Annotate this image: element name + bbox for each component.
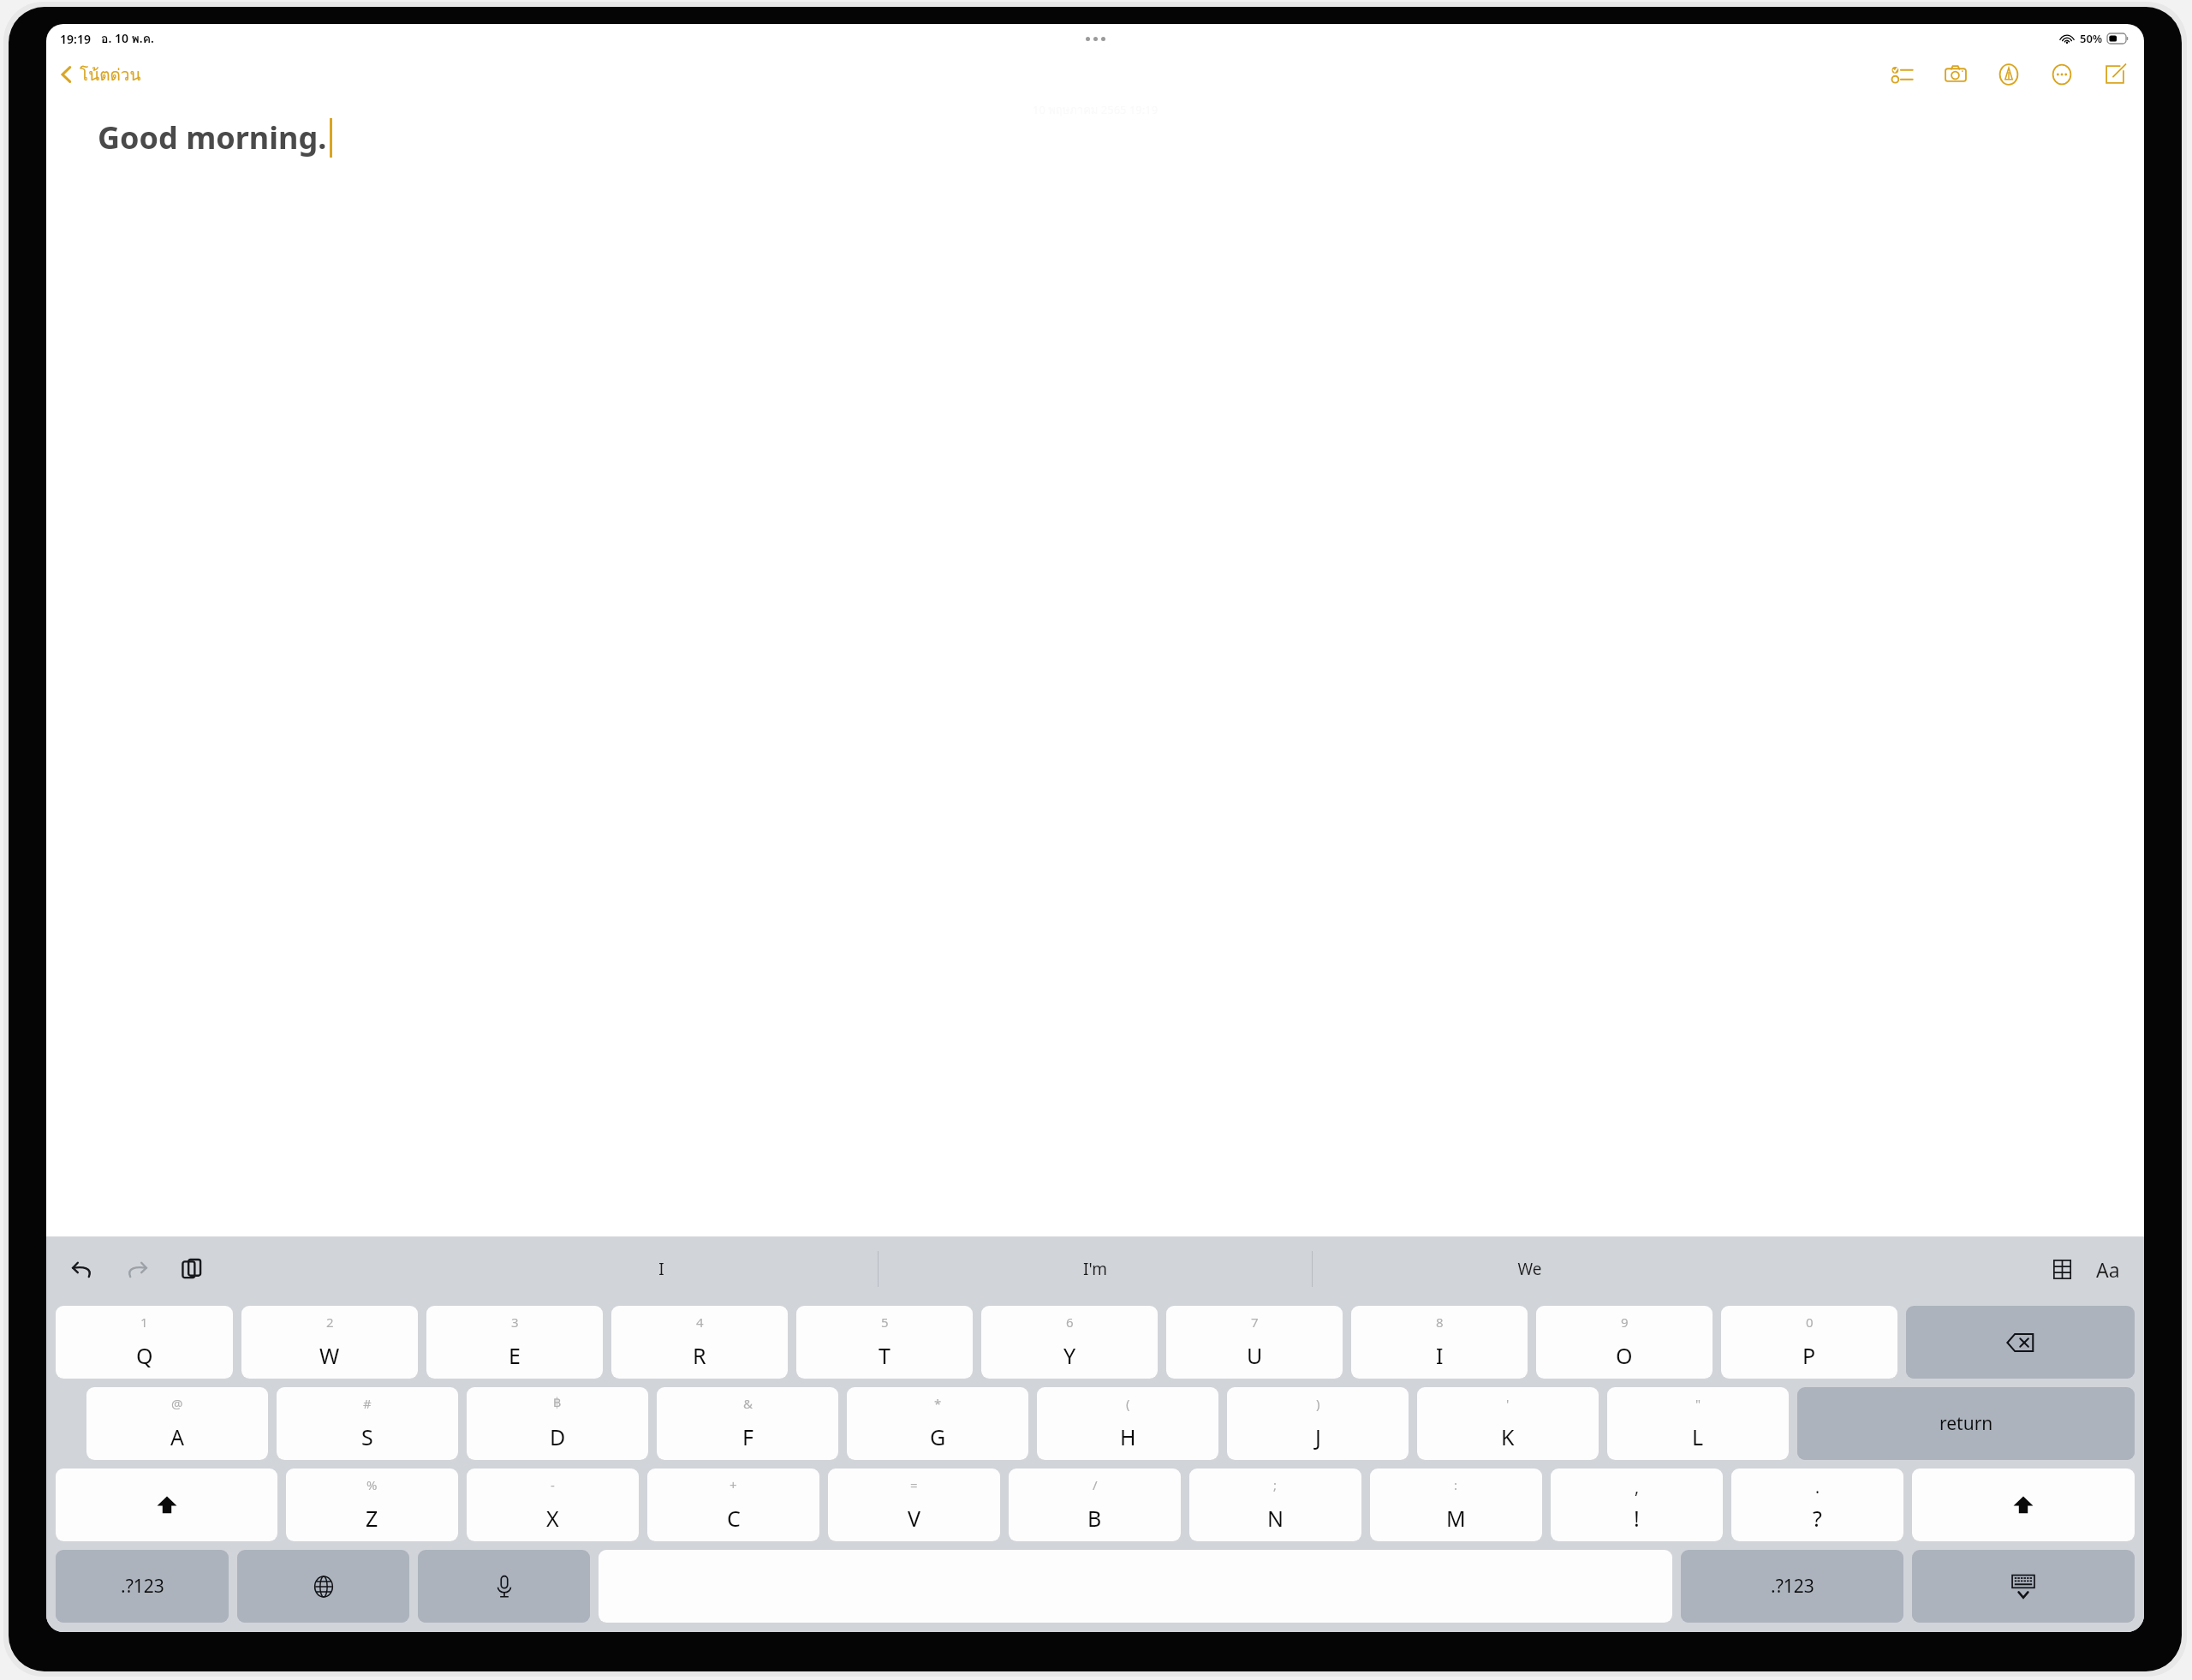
button[interactable]: Change keyboard [237, 1550, 409, 1623]
button[interactable]: @ [86, 1387, 268, 1460]
button[interactable]: * [847, 1387, 1028, 1460]
button[interactable]: More [2045, 57, 2079, 92]
staticText: E [509, 1341, 521, 1370]
staticText: 2 [326, 1314, 334, 1331]
button[interactable]: Camera [1939, 57, 1973, 92]
staticText: 1 [140, 1314, 148, 1331]
staticText: @ [171, 1395, 183, 1412]
button[interactable]: 5 [796, 1306, 973, 1379]
staticText: + [730, 1476, 737, 1493]
staticText: T [879, 1341, 890, 1370]
staticText: A [170, 1422, 184, 1451]
staticText: ; [1273, 1476, 1278, 1493]
staticText: 7 [1251, 1314, 1259, 1331]
staticText: 9 [1621, 1314, 1629, 1331]
staticText: C [727, 1504, 741, 1533]
staticText: ! [1634, 1504, 1640, 1533]
button[interactable]: Paste [175, 1252, 209, 1286]
button[interactable]: 8 [1351, 1306, 1528, 1379]
staticText: N [1267, 1504, 1284, 1533]
button[interactable]: Markup [1992, 57, 2026, 92]
button[interactable]: Insert table [2045, 1252, 2079, 1286]
button[interactable]: Aa [2091, 1252, 2125, 1286]
staticText: ฿ [553, 1395, 562, 1409]
button[interactable]: Shift [1912, 1469, 2135, 1541]
button[interactable]: % [286, 1469, 458, 1541]
button[interactable]: I [445, 1236, 878, 1302]
button[interactable]: # [277, 1387, 458, 1460]
button[interactable]: I'm [879, 1236, 1312, 1302]
staticText: & [743, 1395, 753, 1412]
button[interactable]: . [1731, 1469, 1903, 1541]
button[interactable]: - [467, 1469, 639, 1541]
staticText: : [1454, 1476, 1458, 1493]
staticText: 4 [696, 1314, 704, 1331]
staticText: M [1446, 1504, 1466, 1533]
staticText: - [551, 1476, 555, 1493]
button[interactable]: โน้ตด่วน [53, 58, 148, 91]
button[interactable]: 6 [981, 1306, 1158, 1379]
staticText: V [908, 1504, 921, 1533]
staticText: ' [1506, 1395, 1510, 1412]
staticText: I [658, 1258, 664, 1280]
staticText: ) [1316, 1395, 1320, 1412]
staticText: 19:19 [60, 31, 91, 47]
staticText: 50% [2080, 31, 2103, 46]
button[interactable]: We [1313, 1236, 1746, 1302]
staticText: 3 [511, 1314, 519, 1331]
staticText: I [1436, 1341, 1444, 1370]
button[interactable]: ) [1227, 1387, 1409, 1460]
button[interactable]: 0 [1721, 1306, 1897, 1379]
button[interactable]: Redo [120, 1252, 154, 1286]
staticText: , [1635, 1476, 1640, 1498]
staticText: .?123 [121, 1574, 164, 1599]
button[interactable]: ; [1189, 1469, 1361, 1541]
button[interactable]: = [828, 1469, 1000, 1541]
staticText: ? [1813, 1504, 1822, 1533]
button[interactable]: , [1551, 1469, 1723, 1541]
button[interactable]: Dictation [418, 1550, 590, 1623]
button[interactable]: Compose [2098, 57, 2132, 92]
staticText: 8 [1436, 1314, 1444, 1331]
staticText: Aa [2096, 1256, 2120, 1283]
staticText: return [1939, 1411, 1993, 1436]
button[interactable]: Hide keyboard [1912, 1550, 2135, 1623]
button[interactable]: Shift [56, 1469, 277, 1541]
staticText: P [1802, 1341, 1816, 1370]
staticText: We [1517, 1258, 1542, 1280]
button[interactable]: " [1607, 1387, 1789, 1460]
button[interactable]: 3 [426, 1306, 603, 1379]
staticText: R [693, 1341, 706, 1370]
button[interactable]: 9 [1536, 1306, 1712, 1379]
button[interactable]: Backspace [1906, 1306, 2135, 1379]
staticText: I'm [1083, 1258, 1107, 1280]
staticText: K [1501, 1422, 1515, 1451]
staticText: # [363, 1395, 372, 1412]
staticText: F [742, 1422, 753, 1451]
staticText: * [934, 1395, 942, 1412]
button[interactable]: return [1797, 1387, 2135, 1460]
staticText: / [1093, 1476, 1098, 1493]
staticText: ( [1126, 1395, 1130, 1412]
button[interactable]: & [657, 1387, 838, 1460]
staticText: = [910, 1476, 918, 1493]
button[interactable]: 2 [241, 1306, 418, 1379]
staticText: W [319, 1341, 340, 1370]
button[interactable]: .?123 [1681, 1550, 1903, 1623]
button[interactable]: / [1009, 1469, 1181, 1541]
staticText: โน้ตด่วน [80, 62, 141, 87]
staticText: X [546, 1504, 559, 1533]
button[interactable]: ฿ [467, 1387, 648, 1460]
button[interactable]: 7 [1166, 1306, 1343, 1379]
button[interactable]: Checklist [1885, 57, 1920, 92]
button[interactable]: 4 [611, 1306, 788, 1379]
button[interactable]: + [647, 1469, 819, 1541]
button[interactable]: .?123 [56, 1550, 229, 1623]
button[interactable]: ' [1417, 1387, 1599, 1460]
staticText: Q [136, 1341, 153, 1370]
button[interactable]: : [1370, 1469, 1542, 1541]
button[interactable]: Undo [65, 1252, 99, 1286]
button[interactable]: ( [1037, 1387, 1218, 1460]
button[interactable]: 1 [56, 1306, 233, 1379]
